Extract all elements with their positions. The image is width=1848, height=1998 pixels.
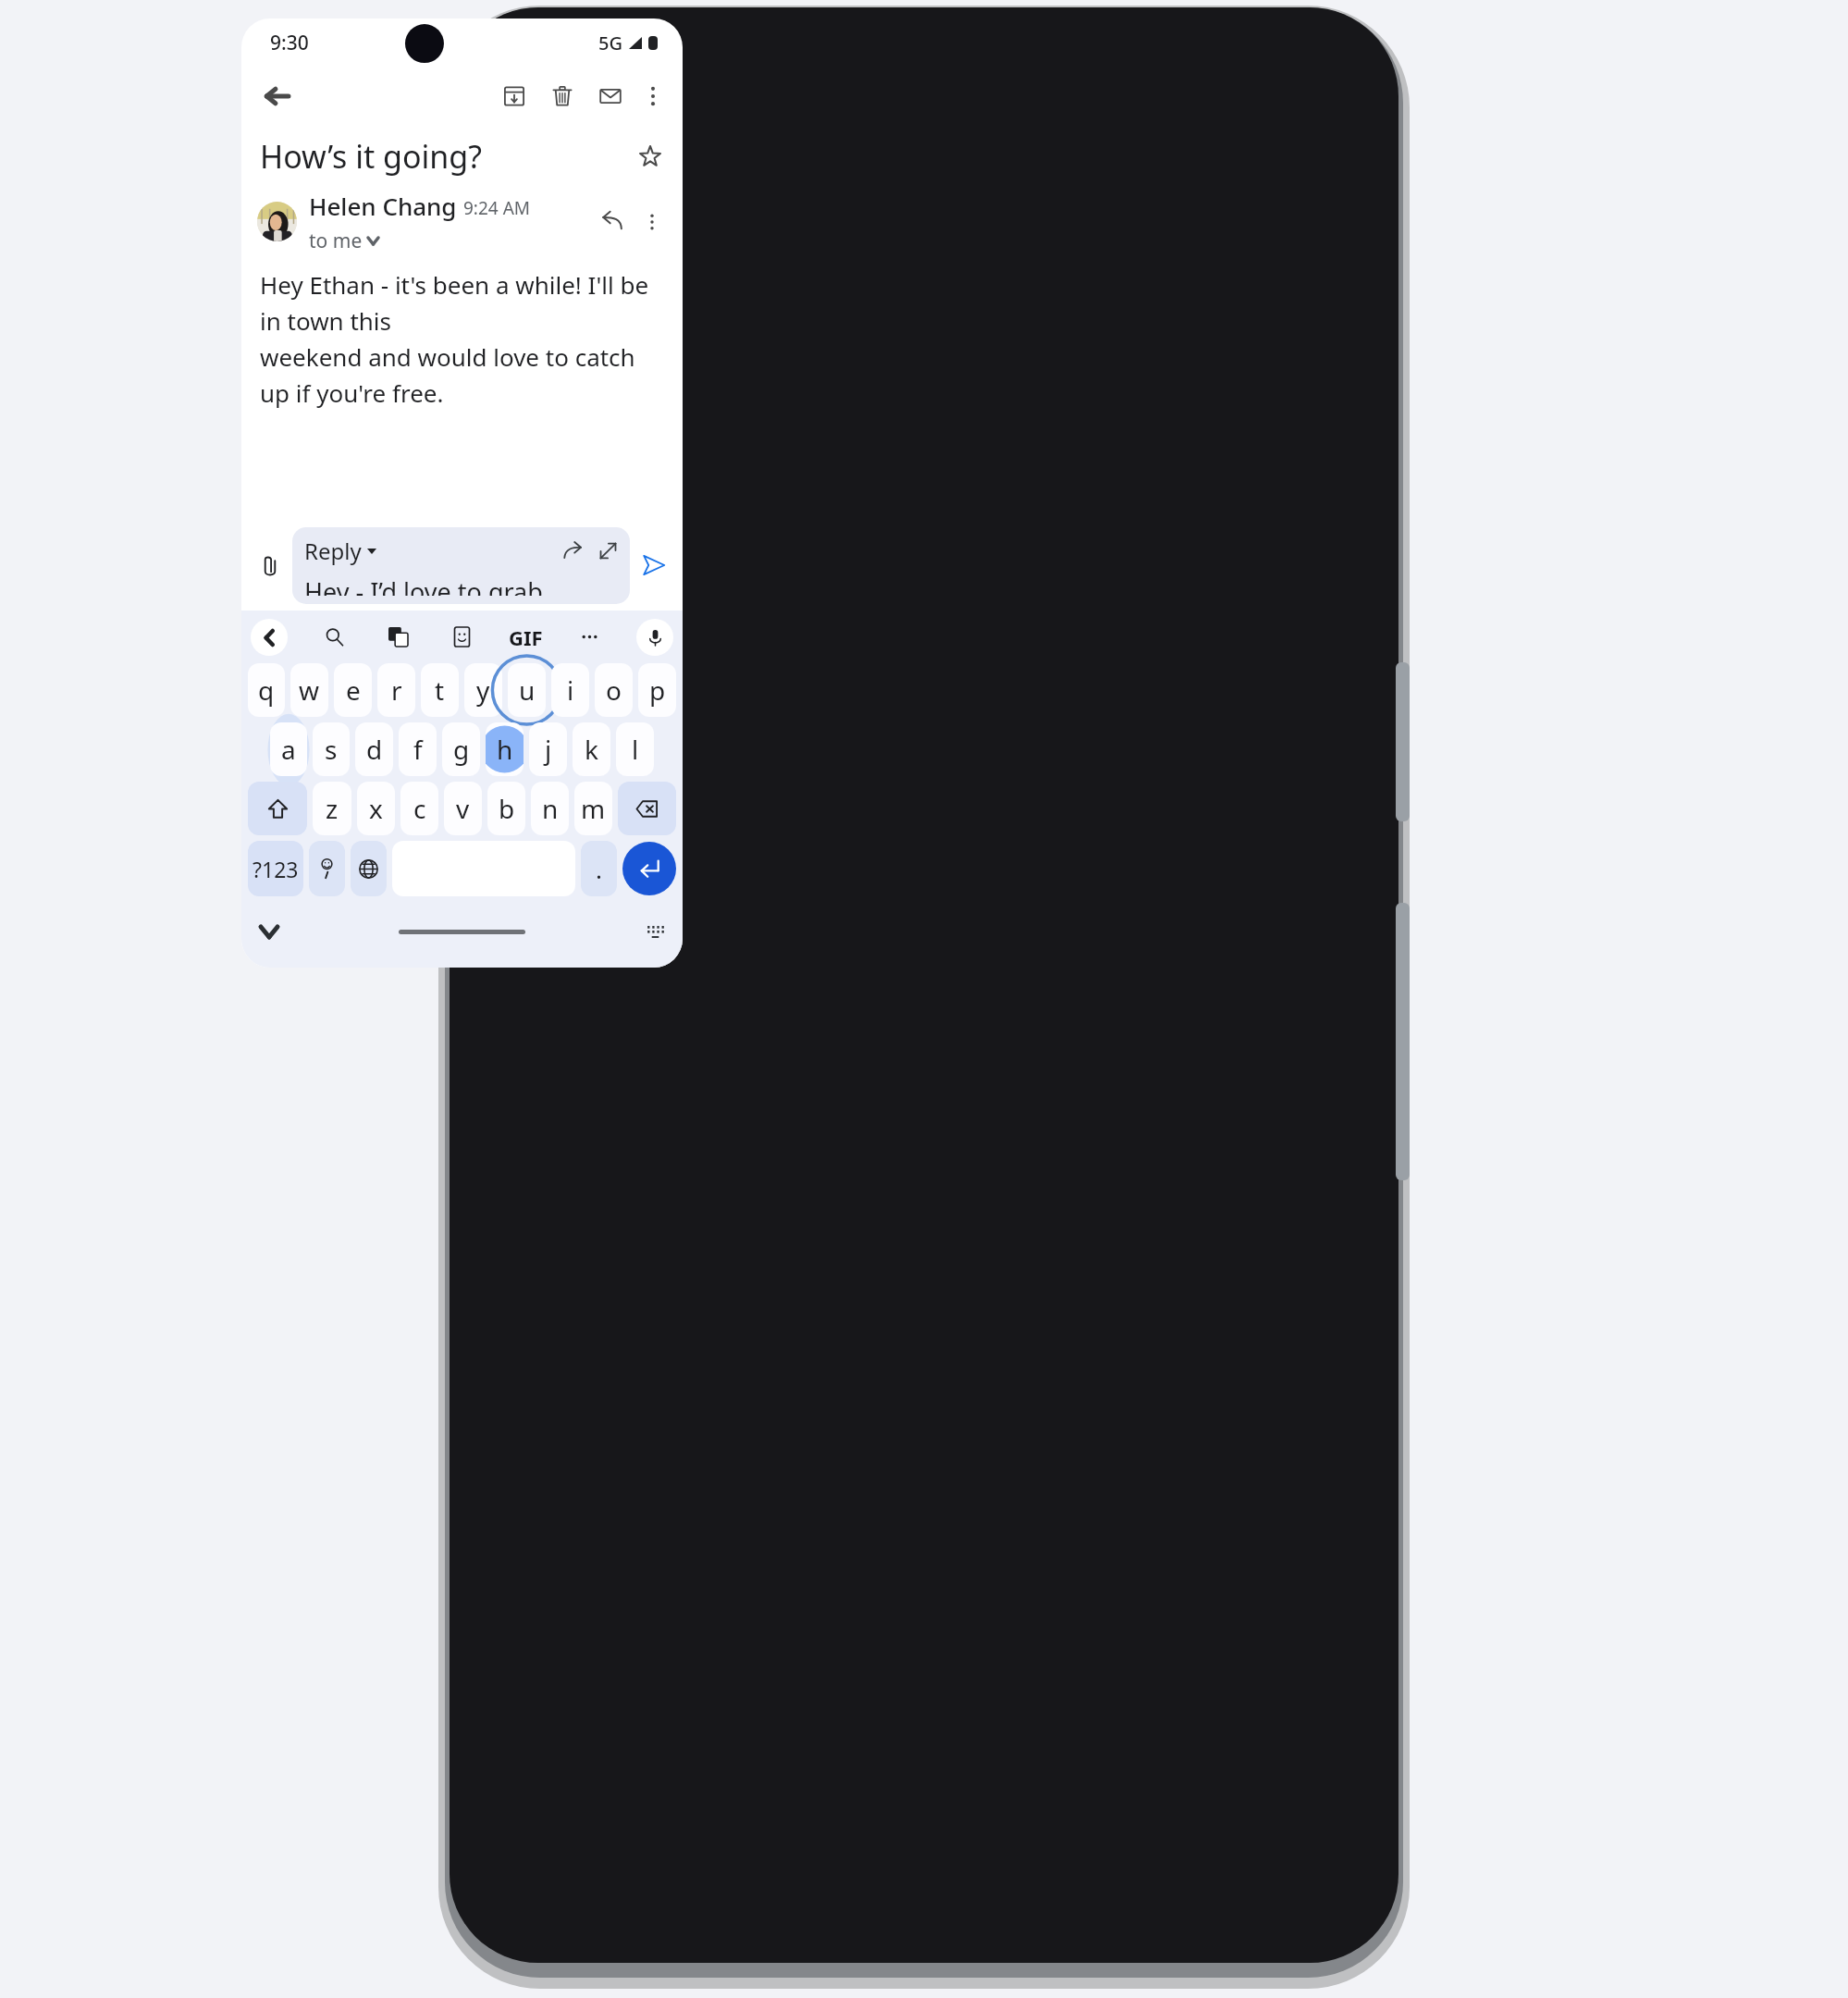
button[interactable]: Voice input [636, 619, 673, 656]
button[interactable]: Archive [496, 78, 532, 114]
button[interactable]: Shift [248, 782, 307, 835]
button[interactable]: GIF [509, 620, 543, 654]
button[interactable]: to me [309, 228, 378, 254]
staticText: k [585, 732, 598, 767]
staticText: y [476, 672, 490, 708]
staticText: 9:24 AM [463, 196, 531, 220]
staticText: d [366, 732, 383, 767]
staticText: h [497, 732, 513, 767]
staticText: How’s it going? [260, 135, 483, 178]
button[interactable]: Search [317, 620, 351, 654]
button[interactable]: . [581, 841, 617, 896]
button[interactable]: Backspace [618, 782, 676, 835]
button[interactable]: k [573, 722, 610, 776]
button[interactable]: f [399, 722, 437, 776]
button[interactable]: m [574, 782, 612, 835]
staticText: q [258, 672, 275, 708]
staticText: 9:30 [270, 30, 309, 56]
button[interactable]: Mark unread [592, 78, 628, 114]
button[interactable]: o [595, 663, 633, 717]
staticText: Reply [304, 536, 362, 566]
button[interactable]: ?123 [248, 841, 303, 896]
button[interactable]: Emoji [309, 841, 345, 896]
button[interactable]: i [551, 663, 589, 717]
button[interactable]: n [531, 782, 569, 835]
staticText: x [369, 791, 383, 826]
button[interactable]: Enter [622, 842, 676, 895]
staticText: r [391, 672, 402, 708]
staticText: w [299, 672, 320, 708]
button[interactable]: g [442, 722, 480, 776]
staticText: ?123 [253, 855, 299, 883]
staticText: to me [309, 228, 363, 254]
staticText: GIF [509, 623, 543, 651]
button[interactable]: y [464, 663, 502, 717]
button[interactable]: r [377, 663, 415, 717]
button[interactable]: Back [258, 77, 297, 116]
staticText: v [456, 791, 470, 826]
button[interactable]: Change language [351, 841, 387, 896]
staticText: n [542, 791, 559, 826]
button[interactable]: a [270, 722, 307, 776]
staticText: o [606, 672, 622, 708]
button[interactable]: s [313, 722, 350, 776]
button[interactable]: More [636, 206, 667, 237]
button[interactable]: Stickers [445, 620, 479, 654]
button[interactable]: w [290, 663, 328, 717]
button[interactable]: j [529, 722, 567, 776]
staticText: a [281, 732, 296, 767]
staticText: c [413, 791, 426, 826]
staticText: p [649, 672, 666, 708]
staticText: f [413, 732, 423, 767]
button[interactable]: Star [632, 138, 668, 174]
staticText: Hey - I’d love to grab lunch! [304, 574, 618, 596]
staticText: m [581, 791, 606, 826]
staticText: e [346, 672, 361, 708]
button[interactable]: q [248, 663, 285, 717]
button[interactable]: h [486, 722, 524, 776]
staticText: s [325, 732, 338, 767]
staticText: j [545, 732, 552, 767]
button[interactable]: Attach file [252, 548, 288, 584]
button[interactable]: Reply [595, 204, 629, 239]
staticText: u [519, 672, 536, 708]
staticText: 5G [598, 31, 622, 55]
button[interactable]: d [355, 722, 393, 776]
button[interactable]: More [573, 620, 607, 654]
button[interactable]: More options [634, 78, 671, 114]
button[interactable]: Hide keyboard [253, 917, 284, 947]
staticText: t [435, 672, 445, 708]
staticText: . [596, 853, 602, 885]
staticText: l [632, 732, 639, 767]
button[interactable]: v [444, 782, 482, 835]
button[interactable]: t [421, 663, 459, 717]
button[interactable]: Send [635, 547, 672, 584]
button[interactable]: p [638, 663, 676, 717]
button[interactable]: Translate [381, 620, 415, 654]
button[interactable]: z [313, 782, 351, 835]
button[interactable]: c [400, 782, 438, 835]
staticText: i [567, 672, 574, 708]
staticText: g [453, 732, 470, 767]
staticText: Helen Chang [309, 190, 457, 222]
button[interactable]: Expand toolbar [251, 619, 288, 656]
staticText: z [326, 791, 339, 826]
button[interactable]: l [616, 722, 654, 776]
button[interactable]: Keyboard settings [640, 917, 671, 947]
staticText: b [499, 791, 515, 826]
button[interactable]: Delete [544, 78, 580, 114]
button[interactable]: u [508, 663, 546, 717]
button[interactable]: Reply [292, 527, 630, 604]
button[interactable]: x [357, 782, 395, 835]
button[interactable]: e [334, 663, 372, 717]
button[interactable]: b [487, 782, 525, 835]
staticText: Hey Ethan - it's been a while! I'll be i… [260, 268, 666, 409]
